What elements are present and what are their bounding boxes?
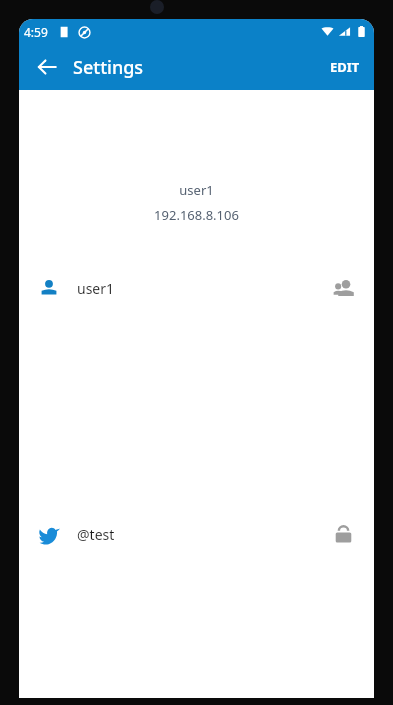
button[interactable]: Back	[27, 44, 67, 90]
staticText: 192.168.8.106	[154, 206, 239, 224]
button[interactable]: Group	[326, 271, 360, 305]
staticText: Settings	[73, 55, 144, 80]
button[interactable]: user1	[19, 264, 374, 312]
staticText: 4:59	[24, 24, 48, 40]
staticText: user1	[179, 181, 214, 199]
staticText: EDIT	[330, 58, 360, 76]
staticText: user1	[77, 279, 115, 298]
button[interactable]: Locked	[326, 517, 360, 551]
button[interactable]: EDIT	[316, 44, 374, 90]
button[interactable]: @test	[19, 510, 374, 558]
staticText: @test	[77, 525, 115, 544]
